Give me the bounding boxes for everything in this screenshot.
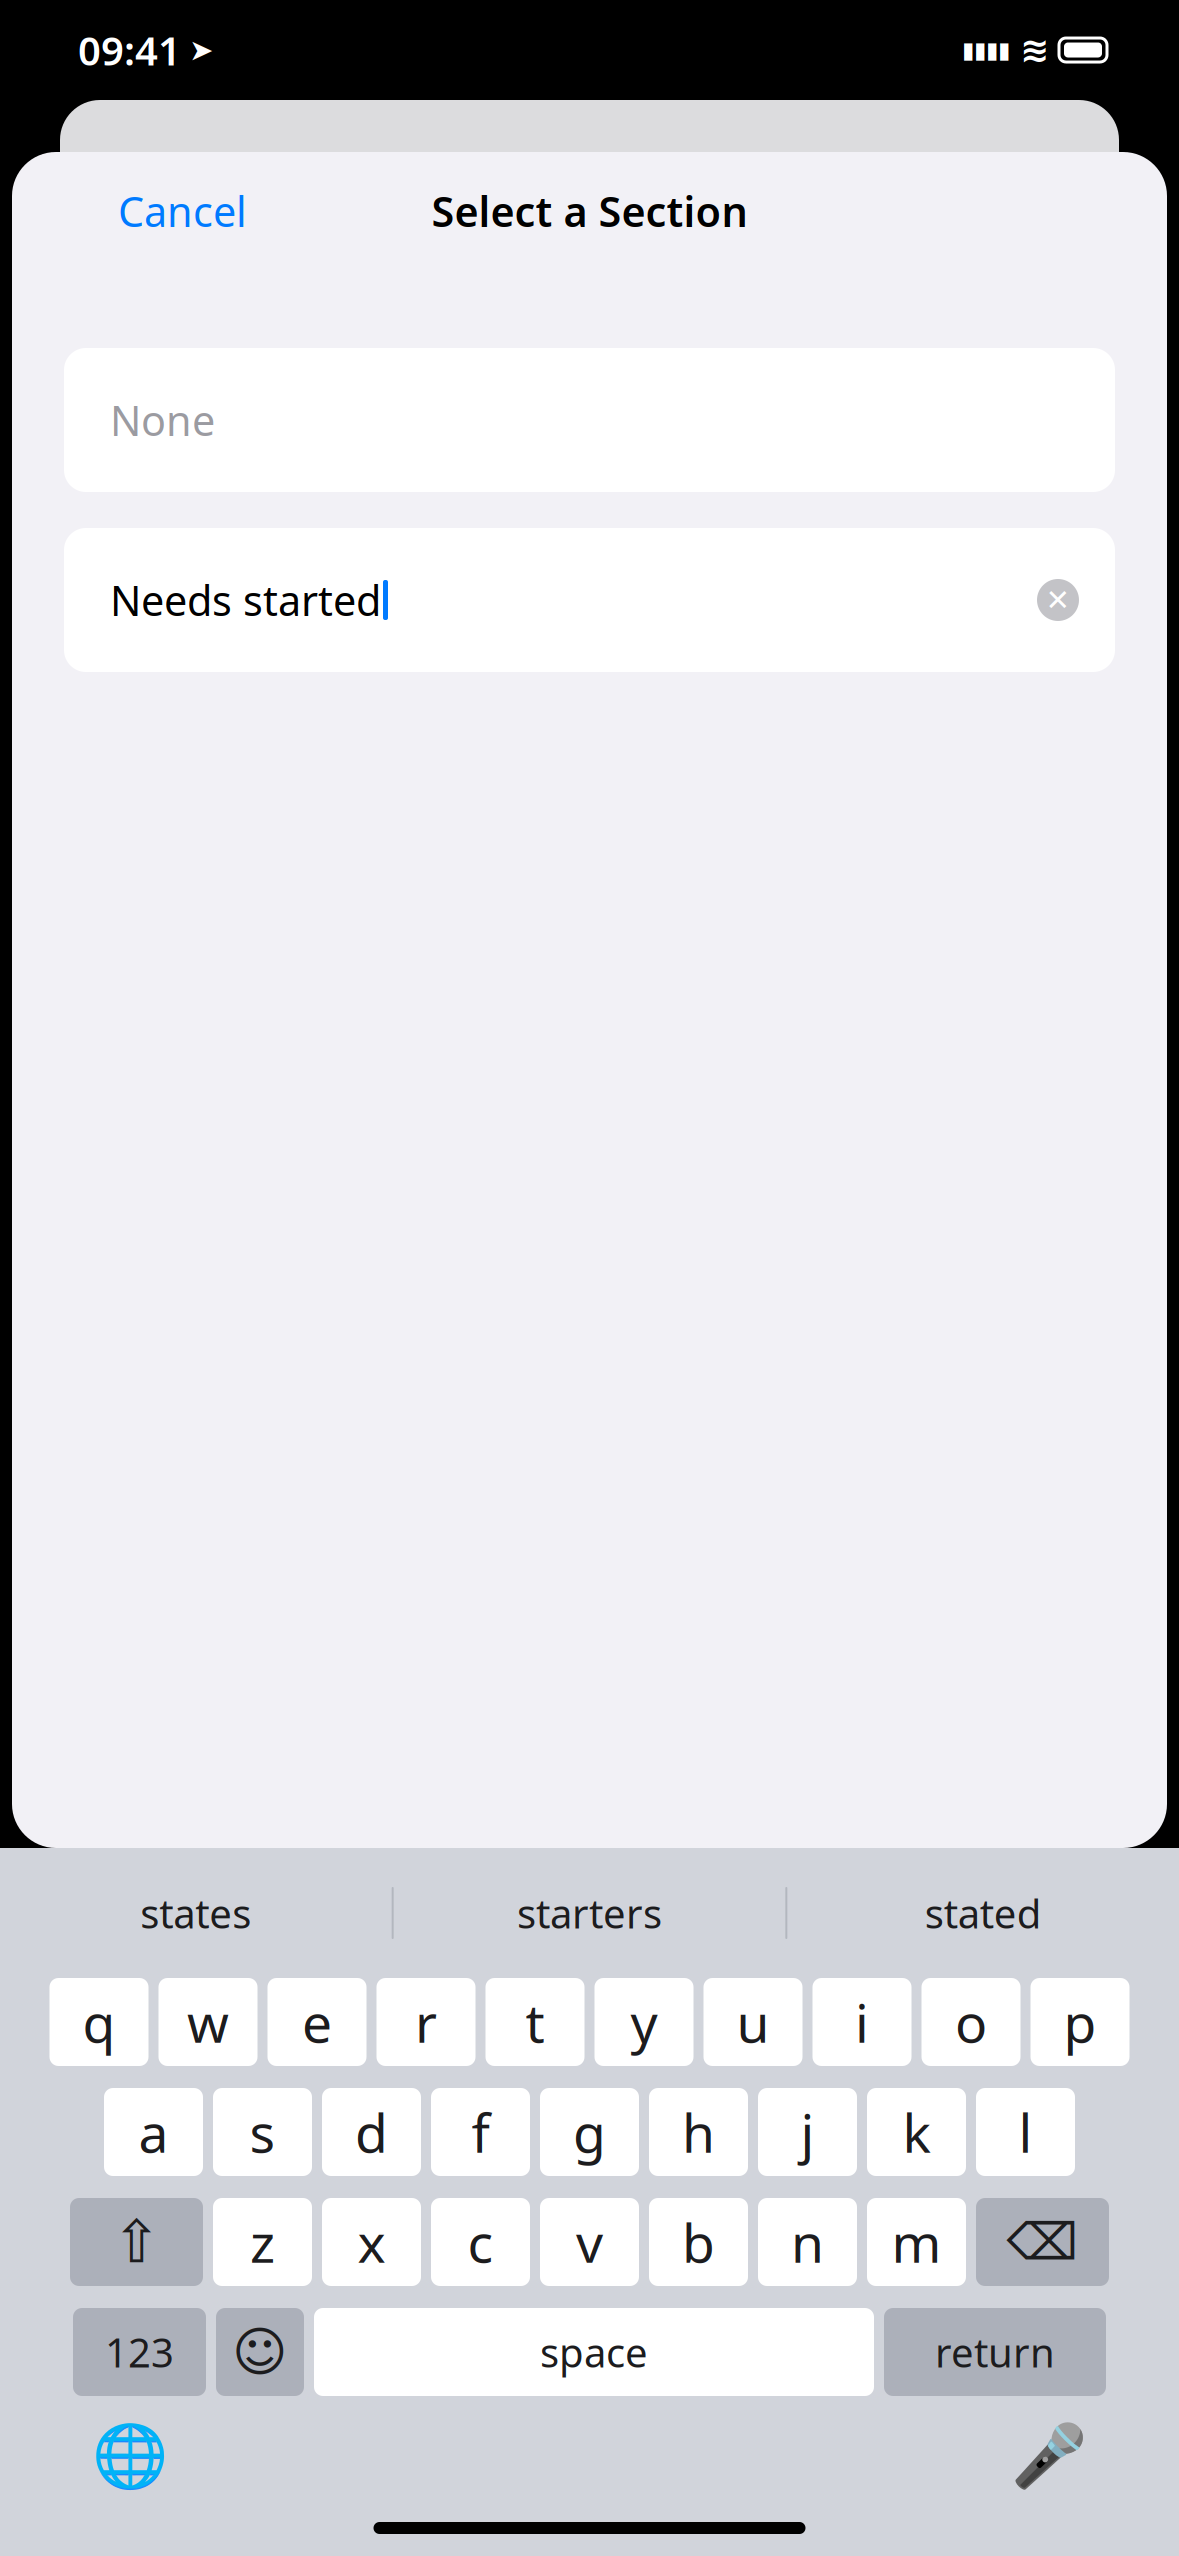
button[interactable]: u	[703, 1978, 802, 2066]
button[interactable]: e	[267, 1978, 366, 2066]
staticText: i	[855, 1987, 869, 2057]
button[interactable]: space	[314, 2308, 874, 2396]
button[interactable]: z	[213, 2198, 312, 2286]
staticText: stated	[925, 1886, 1042, 1939]
staticText: u	[736, 1987, 769, 2057]
staticText: 09:41	[78, 23, 181, 76]
button[interactable]: q	[49, 1978, 148, 2066]
staticText: y	[630, 1987, 657, 2057]
staticText: v	[576, 2207, 603, 2277]
staticText: l	[1018, 2097, 1032, 2167]
button[interactable]: stated	[787, 1865, 1179, 1961]
button[interactable]: m	[867, 2198, 966, 2286]
button[interactable]: k	[867, 2088, 966, 2176]
button[interactable]: r	[376, 1978, 475, 2066]
button[interactable]: x	[322, 2198, 421, 2286]
staticText: n	[791, 2207, 824, 2277]
button[interactable]: 123	[73, 2308, 206, 2396]
staticText: ▮▮▮▮	[962, 37, 1010, 63]
staticText: ⇧	[112, 2209, 161, 2275]
button[interactable]: Needs started	[64, 528, 1115, 672]
button[interactable]: Emoji	[216, 2308, 304, 2396]
button[interactable]: starters	[394, 1865, 785, 1961]
staticText: t	[525, 1987, 544, 2057]
staticText: ⌫	[1006, 2213, 1078, 2271]
button[interactable]: l	[976, 2088, 1075, 2176]
staticText: s	[249, 2097, 275, 2167]
staticText: a	[138, 2097, 168, 2167]
staticText: q	[82, 1987, 115, 2057]
button[interactable]: Next keyboard	[82, 2408, 178, 2504]
staticText: ➤	[189, 33, 214, 67]
button[interactable]: d	[322, 2088, 421, 2176]
button[interactable]: b	[649, 2198, 748, 2286]
staticText: states	[140, 1886, 251, 1939]
button[interactable]: None	[64, 348, 1115, 492]
staticText: h	[682, 2097, 715, 2167]
staticText: ✕	[1045, 583, 1070, 617]
staticText: x	[357, 2207, 385, 2277]
staticText: m	[891, 2207, 941, 2277]
staticText: j	[800, 2097, 814, 2167]
staticText: 🌐	[92, 2421, 168, 2491]
button[interactable]: v	[540, 2198, 639, 2286]
staticText: Select a Section	[431, 184, 747, 238]
button[interactable]: g	[540, 2088, 639, 2176]
staticText: None	[110, 393, 215, 447]
staticText: return	[935, 2325, 1055, 2378]
button[interactable]: h	[649, 2088, 748, 2176]
staticText: c	[467, 2207, 493, 2277]
button[interactable]: p	[1030, 1978, 1129, 2066]
button[interactable]: a	[104, 2088, 203, 2176]
button[interactable]: Cancel	[108, 172, 257, 250]
staticText: p	[1063, 1987, 1096, 2057]
button[interactable]: y	[594, 1978, 693, 2066]
staticText: e	[302, 1987, 332, 2057]
button[interactable]: j	[758, 2088, 857, 2176]
staticText: Needs started	[110, 573, 381, 627]
staticText: g	[573, 2097, 606, 2167]
button[interactable]: n	[758, 2198, 857, 2286]
button[interactable]: s	[213, 2088, 312, 2176]
button[interactable]: o	[921, 1978, 1020, 2066]
staticText: ≋	[1020, 30, 1049, 70]
staticText: b	[682, 2207, 715, 2277]
staticText: k	[902, 2097, 930, 2167]
staticText: space	[540, 2325, 648, 2378]
staticText: Cancel	[118, 184, 247, 238]
button[interactable]: f	[431, 2088, 530, 2176]
button[interactable]: Shift	[70, 2198, 203, 2286]
staticText: starters	[517, 1886, 662, 1939]
staticText: f	[471, 2097, 489, 2167]
staticText: r	[415, 1987, 437, 2057]
staticText: o	[955, 1987, 987, 2057]
button[interactable]: Delete	[976, 2198, 1109, 2286]
button[interactable]: states	[0, 1865, 392, 1961]
button[interactable]: w	[158, 1978, 257, 2066]
button[interactable]: t	[485, 1978, 584, 2066]
button[interactable]: i	[812, 1978, 911, 2066]
staticText: 123	[105, 2325, 174, 2378]
button[interactable]: return	[884, 2308, 1106, 2396]
button[interactable]: Dictation	[1001, 2408, 1097, 2504]
staticText: ☺	[232, 2322, 288, 2382]
staticText: w	[187, 1987, 229, 2057]
staticText: z	[250, 2207, 275, 2277]
button[interactable]: c	[431, 2198, 530, 2286]
staticText: 🎤	[1011, 2421, 1087, 2491]
staticText: d	[355, 2097, 388, 2167]
